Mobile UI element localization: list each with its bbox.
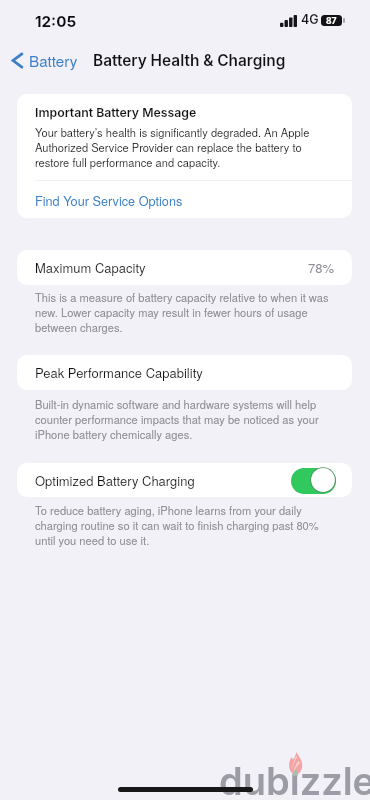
staticText: Battery Health & Charging [93,51,286,70]
staticText: Battery [29,50,78,72]
staticText: Find Your Service Options [35,191,183,209]
staticText: Maximum Capacity [35,258,146,277]
staticText: Optimized Battery Charging [35,471,195,490]
staticText: 4G [301,12,319,27]
button[interactable]: Find Your Service Options [17,181,352,218]
staticText: This is a measure of battery capacity re… [35,290,335,335]
staticText: dubizzle [219,758,370,800]
button[interactable]: Peak Performance Capability [17,355,352,390]
button[interactable]: Optimized Battery Charging [291,467,336,494]
staticText: 12:05 [35,12,77,30]
staticText: To reduce battery aging, iPhone learns f… [35,503,335,548]
button[interactable]: Maximum Capacity [17,250,352,285]
staticText: Peak Performance Capability [35,363,203,382]
staticText: 78% [308,258,335,277]
staticText: Important Battery Message [35,105,197,120]
staticText: Built-in dynamic software and hardware s… [35,397,335,442]
staticText: Your battery’s health is significantly d… [35,125,330,170]
staticText: 87 [326,16,337,26]
button[interactable]: Battery [0,47,84,73]
